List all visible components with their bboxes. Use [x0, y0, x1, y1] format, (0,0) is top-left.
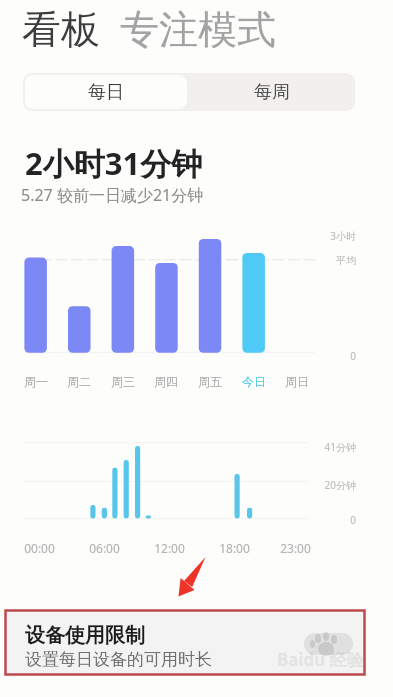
staticText: 06:00 — [89, 540, 120, 556]
staticText: 20分钟 — [324, 478, 356, 492]
staticText: 18:00 — [219, 540, 250, 556]
staticText: 设备使用限制 — [25, 623, 145, 648]
button[interactable]: 每日 — [25, 75, 187, 109]
staticText: 设置每日设备的可用时长 — [25, 649, 212, 670]
staticText: 每日 — [88, 81, 124, 104]
staticText: 12:00 — [154, 540, 185, 556]
button[interactable]: 每周 — [189, 73, 355, 111]
staticText: 周日 — [285, 374, 309, 389]
staticText: 周四 — [154, 374, 178, 389]
button[interactable]: 专注模式 — [120, 5, 276, 54]
staticText: 平均 — [336, 254, 356, 267]
other: Baidu watermark — [300, 630, 360, 670]
staticText: Baidu 经验 — [277, 648, 364, 671]
staticText: 周一 — [24, 374, 48, 389]
staticText: 每周 — [254, 81, 290, 104]
staticText: 0 — [350, 349, 356, 363]
staticText: 41分钟 — [324, 440, 356, 454]
staticText: 2小时31分钟 — [25, 142, 203, 184]
staticText: 周三 — [111, 374, 135, 389]
staticText: 周五 — [198, 374, 222, 389]
staticText: 00:00 — [24, 540, 55, 556]
staticText: 5.27 较前一日减少21分钟 — [21, 184, 204, 206]
button[interactable]: 设备使用限制 — [5, 610, 365, 675]
staticText: 3小时 — [330, 229, 356, 243]
staticText: 周二 — [67, 374, 91, 389]
staticText: 今日 — [242, 374, 266, 389]
staticText: 23:00 — [280, 540, 311, 556]
button[interactable]: 看板 — [22, 5, 100, 54]
staticText: 0 — [350, 513, 356, 527]
